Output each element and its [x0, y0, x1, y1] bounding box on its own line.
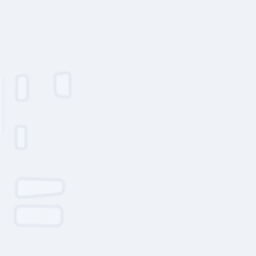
- button[interactable]: Primary action: [16, 176, 64, 198]
- button[interactable]: Secondary action: [15, 206, 62, 226]
